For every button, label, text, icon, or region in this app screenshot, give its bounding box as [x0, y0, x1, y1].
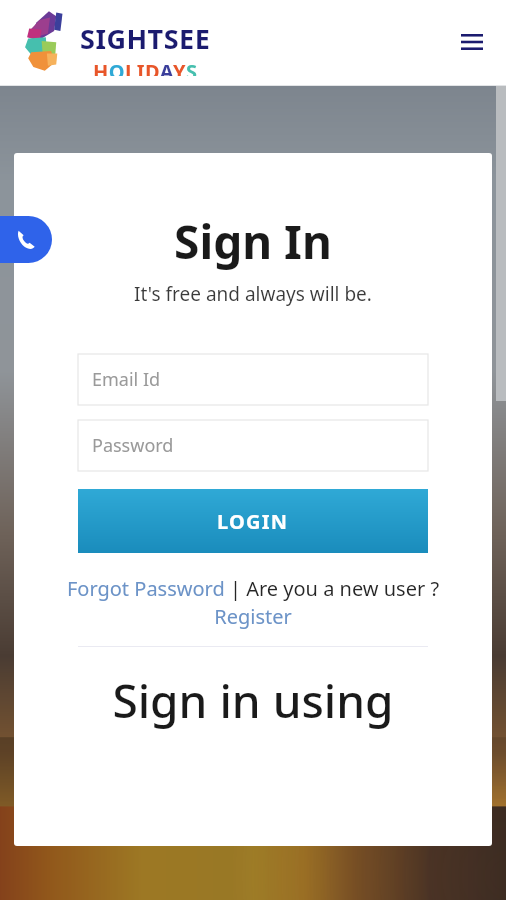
- staticText: LOGIN: [217, 508, 289, 535]
- button[interactable]: Call: [0, 216, 52, 263]
- button[interactable]: Menu: [452, 22, 492, 62]
- staticText: HOLIDAYS: [93, 58, 198, 76]
- staticText: SIGHTSEE: [80, 20, 211, 57]
- staticText: Password: [92, 433, 174, 458]
- staticText: Sign in using: [112, 669, 394, 732]
- button[interactable]: Email Id: [78, 354, 428, 405]
- staticText: Sign In: [174, 210, 332, 273]
- staticText: It's free and always will be.: [134, 281, 372, 307]
- staticText: Email Id: [92, 367, 161, 392]
- staticText: Forgot Password | Are you a new user ? R…: [66, 575, 440, 630]
- button[interactable]: Forgot Password | Are you a new user ? R…: [66, 575, 440, 630]
- button[interactable]: Password: [78, 420, 428, 471]
- button[interactable]: LOGIN: [78, 489, 428, 553]
